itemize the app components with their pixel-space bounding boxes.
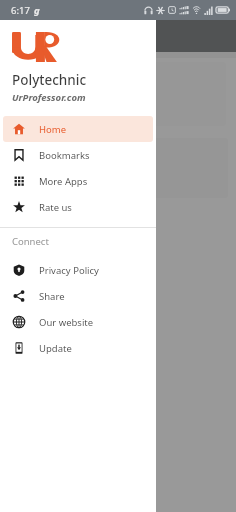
button[interactable]: Play (40, 258, 68, 286)
staticText: Bookmarks (39, 149, 90, 162)
button[interactable]: Share (3, 283, 153, 309)
staticText: Polytechnic (12, 71, 87, 89)
button[interactable]: Privacy Policy (3, 257, 153, 283)
staticText: 6:17 (11, 4, 30, 17)
staticText: More Apps (39, 175, 88, 188)
staticText: Home (39, 123, 67, 136)
button[interactable]: More Apps (3, 168, 153, 194)
staticText: Our website (39, 316, 94, 329)
staticText: Rate us (39, 201, 72, 214)
staticText: Privacy Policy (39, 264, 99, 277)
button[interactable]: Home (3, 116, 153, 142)
staticText: g (34, 4, 40, 17)
staticText: UrProfessor.com (12, 91, 86, 104)
button[interactable]: Our website (3, 309, 153, 335)
staticText: Share (39, 290, 65, 303)
staticText: Update (39, 342, 72, 355)
button[interactable]: More (44, 324, 66, 346)
button[interactable]: Bookmarks (3, 142, 153, 168)
staticText: Connect (12, 235, 49, 248)
button[interactable] (0, 20, 236, 512)
button[interactable]: Rate us (3, 194, 153, 220)
button[interactable]: Update (3, 335, 153, 361)
